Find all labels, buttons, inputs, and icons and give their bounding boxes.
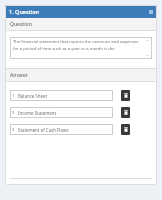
staticText: Balance Sheet [18, 93, 48, 99]
staticText: 1 [12, 93, 15, 99]
staticText: Statement of Cash Flows [18, 127, 69, 133]
button[interactable]: 1. Question [5, 5, 157, 18]
button[interactable]: Delete answer 3 [121, 124, 130, 135]
staticText: The financial statement that reports the… [13, 39, 145, 51]
staticText: 1. Question [9, 8, 40, 15]
staticText: Question [10, 21, 32, 28]
button[interactable]: Delete answer 2 [121, 107, 130, 118]
button[interactable]: 1 [10, 90, 113, 101]
staticText: Answer [10, 72, 28, 79]
staticText: 3 [12, 127, 15, 133]
button[interactable]: 3 [10, 124, 113, 135]
button[interactable]: 2 [10, 107, 113, 118]
staticText: Income Statement [18, 110, 57, 116]
staticText: 2 [12, 110, 15, 116]
button[interactable]: The financial statement that reports the… [10, 37, 152, 59]
button[interactable]: Delete answer 1 [121, 90, 130, 101]
